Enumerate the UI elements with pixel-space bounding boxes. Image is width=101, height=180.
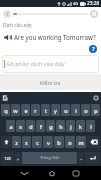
button[interactable]: Back bbox=[3, 10, 11, 18]
staticText: x bbox=[25, 139, 28, 146]
staticText: a bbox=[9, 123, 13, 130]
button[interactable]: . bbox=[78, 152, 84, 164]
button[interactable]: Close bbox=[90, 10, 98, 18]
staticText: h bbox=[59, 123, 63, 130]
staticText: Kiểm tra bbox=[40, 79, 61, 86]
button[interactable]: q bbox=[1, 104, 10, 116]
button[interactable]: y bbox=[51, 104, 60, 116]
button[interactable]: k bbox=[76, 120, 85, 132]
staticText: e bbox=[24, 107, 28, 114]
button[interactable]: Enter bbox=[85, 152, 100, 164]
button[interactable]: h bbox=[56, 120, 65, 132]
staticText: c bbox=[36, 139, 39, 146]
button[interactable]: z bbox=[12, 136, 21, 148]
staticText: t bbox=[45, 107, 47, 114]
button[interactable]: g bbox=[46, 120, 55, 132]
button[interactable]: Recents bbox=[66, 166, 86, 180]
staticText: b bbox=[57, 139, 61, 146]
staticText: j bbox=[70, 123, 72, 130]
button[interactable]: Settings bbox=[93, 95, 99, 101]
button[interactable]: v bbox=[43, 136, 53, 148]
staticText: u bbox=[64, 107, 68, 114]
staticText: d bbox=[29, 123, 33, 130]
staticText: Gõ phần dịch vào đây bbox=[6, 60, 65, 68]
staticText: z bbox=[15, 139, 18, 146]
button[interactable]: Home bbox=[42, 166, 62, 180]
staticText: y bbox=[54, 107, 57, 114]
button[interactable]: m bbox=[76, 136, 86, 148]
button[interactable]: u bbox=[61, 104, 70, 116]
button[interactable]: b bbox=[54, 136, 64, 148]
button[interactable]: s bbox=[16, 120, 25, 132]
staticText: v bbox=[47, 139, 50, 146]
staticText: , bbox=[17, 155, 19, 161]
staticText: 123 bbox=[4, 156, 11, 161]
staticText: . bbox=[80, 155, 82, 161]
staticText: 4G bbox=[73, 1, 79, 6]
staticText: 23:26 bbox=[87, 0, 100, 7]
staticText: i bbox=[75, 107, 77, 114]
button[interactable]: Input method bbox=[2, 95, 8, 101]
staticText: s bbox=[19, 123, 22, 130]
button[interactable]: o bbox=[81, 104, 90, 116]
button[interactable]: d bbox=[26, 120, 35, 132]
button[interactable]: Backspace bbox=[87, 136, 100, 148]
button[interactable]: e bbox=[21, 104, 30, 116]
staticText: k bbox=[79, 123, 82, 130]
button[interactable]: f bbox=[36, 120, 45, 132]
button[interactable]: Shift bbox=[1, 136, 11, 148]
staticText: p bbox=[94, 107, 98, 114]
button[interactable]: Gõ phần dịch vào đây bbox=[2, 55, 99, 73]
staticText: Are you working Tomorrow? bbox=[14, 33, 96, 41]
button[interactable]: i bbox=[71, 104, 80, 116]
button[interactable]: 123 bbox=[1, 152, 14, 164]
button[interactable]: w bbox=[11, 104, 20, 116]
button[interactable]: a bbox=[6, 120, 15, 132]
staticText: o bbox=[84, 107, 88, 114]
button[interactable]: Kiểm tra bbox=[0, 74, 101, 90]
button[interactable]: r bbox=[31, 104, 40, 116]
button[interactable]: p bbox=[91, 104, 100, 116]
staticText: q bbox=[4, 107, 8, 114]
staticText: f bbox=[40, 123, 42, 130]
button[interactable]: n bbox=[65, 136, 75, 148]
button[interactable]: Tiếng Việt bbox=[22, 152, 77, 164]
staticText: w bbox=[13, 107, 18, 114]
staticText: g bbox=[49, 123, 53, 130]
button[interactable]: Back bbox=[14, 166, 34, 180]
staticText: ? bbox=[92, 45, 95, 53]
staticText: m bbox=[78, 139, 84, 146]
button[interactable]: , bbox=[15, 152, 21, 164]
button[interactable]: c bbox=[32, 136, 42, 148]
staticText: l bbox=[90, 123, 92, 130]
staticText: n bbox=[68, 139, 72, 146]
staticText: r bbox=[34, 107, 37, 114]
button[interactable]: x bbox=[22, 136, 31, 148]
staticText: Dịch câu này bbox=[3, 22, 32, 29]
button[interactable]: t bbox=[41, 104, 50, 116]
staticText: Tiếng Việt bbox=[40, 155, 60, 161]
button[interactable]: Help bbox=[89, 45, 97, 53]
button[interactable]: l bbox=[86, 120, 95, 132]
button[interactable]: j bbox=[66, 120, 75, 132]
other: Play audio bbox=[4, 34, 12, 41]
